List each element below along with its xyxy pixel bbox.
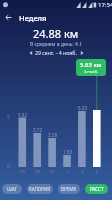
staticText: 4 (95, 169, 98, 175)
staticText: 0 (7, 163, 10, 169)
button[interactable]: 5.63 км (76, 59, 106, 76)
staticText: 17:54 (98, 1, 112, 9)
staticText: 1 (66, 169, 69, 175)
staticText: 5.63 км (80, 61, 102, 69)
button[interactable]: ВРЕМЯ (58, 184, 80, 194)
staticText: 2 (81, 169, 84, 175)
button[interactable]: КАЛОРИЯ (27, 184, 53, 194)
staticText: ВРЕМЯ (61, 186, 77, 192)
staticText: 5.92 (18, 112, 27, 118)
staticText: 6.33 (78, 105, 87, 111)
staticText: 24.88 км (33, 26, 79, 41)
staticText: 3.28 (48, 132, 57, 138)
button[interactable]: Back (2, 11, 15, 24)
staticText: 3.72 (33, 127, 42, 133)
staticText: 29 (20, 169, 25, 175)
staticText: ШАГ (7, 186, 17, 192)
button[interactable]: Next period (77, 48, 86, 57)
staticText: 31 (50, 169, 55, 175)
staticText: В среднем в день: 4.1 (30, 41, 83, 48)
staticText: 5 (7, 114, 10, 120)
staticText: РАССТ (90, 186, 104, 192)
staticText: Неделя (19, 13, 47, 23)
staticText: 29 сент. - 4 нояб. (35, 49, 77, 56)
staticText: 30 (35, 169, 40, 175)
staticText: 4 нояб. (84, 69, 98, 74)
button[interactable]: Previous period (26, 48, 35, 57)
staticText: 1.53 (63, 149, 72, 155)
button[interactable]: РАССТ (85, 184, 108, 194)
button[interactable]: ШАГ (2, 184, 22, 194)
staticText: КАЛОРИЯ (29, 186, 51, 192)
